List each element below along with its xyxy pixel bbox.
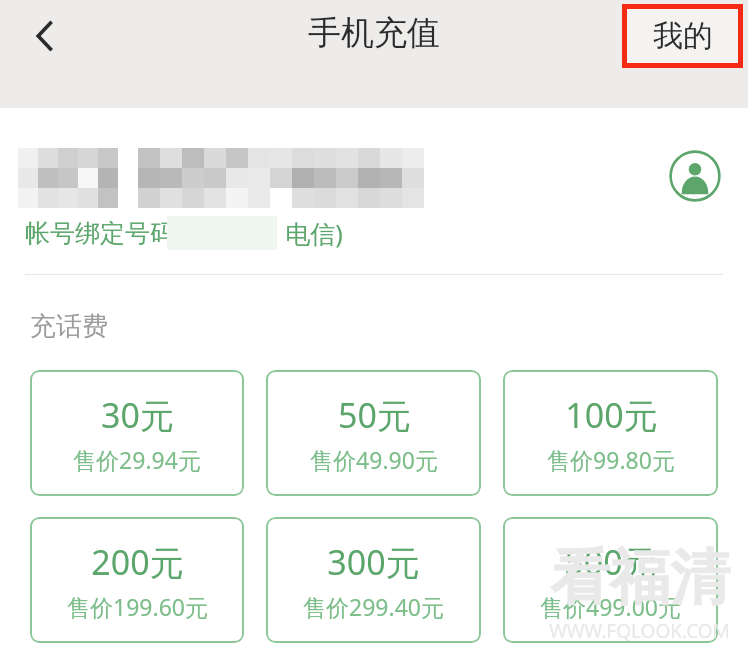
staticText: 50元 — [338, 392, 411, 438]
staticText: 500元 — [564, 539, 657, 585]
staticText: 充话费 — [30, 310, 108, 343]
staticText: 100元 — [565, 392, 658, 438]
button[interactable]: 50元 — [266, 370, 481, 496]
button[interactable]: Back — [16, 7, 74, 65]
button[interactable]: Profile — [667, 148, 723, 204]
button[interactable]: 200元 — [30, 517, 244, 643]
staticText: 售价49.90元 — [310, 444, 438, 475]
staticText: 200元 — [91, 539, 184, 585]
staticText: 售价499.00元 — [540, 591, 681, 622]
button[interactable]: 100元 — [503, 370, 718, 496]
staticText: 售价299.40元 — [303, 591, 444, 622]
staticText: WWW.FQLOOK.COM — [549, 618, 730, 644]
button[interactable]: 30元 — [30, 370, 244, 496]
staticText: 看福清 — [550, 540, 730, 616]
staticText: 售价199.60元 — [67, 591, 208, 622]
button[interactable]: 帐号绑定号码 — [0, 108, 748, 274]
staticText: 手机充值 — [308, 12, 440, 54]
staticText: 售价99.80元 — [547, 444, 675, 475]
button[interactable]: 300元 — [266, 517, 481, 643]
button[interactable]: 我的 — [622, 4, 743, 68]
staticText: 电信) — [285, 216, 343, 250]
staticText: 300元 — [327, 539, 420, 585]
staticText: 帐号绑定号码 — [25, 218, 175, 249]
staticText: 售价29.94元 — [73, 444, 201, 475]
staticText: 我的 — [653, 17, 713, 55]
staticText: 30元 — [101, 392, 174, 438]
button[interactable]: 500元 — [503, 517, 718, 643]
